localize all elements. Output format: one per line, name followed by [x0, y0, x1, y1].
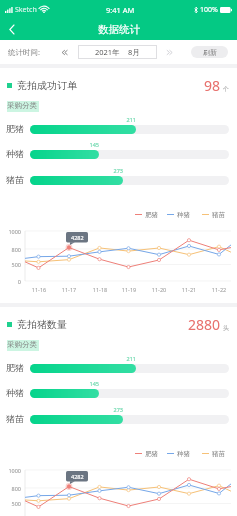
staticText: 数据统计	[98, 23, 140, 36]
staticText: 11-19	[118, 286, 140, 293]
staticText: 肥猪	[6, 362, 24, 373]
staticText: 11-18	[89, 286, 111, 293]
staticText: 肥猪	[145, 211, 158, 219]
staticText: 800	[0, 246, 21, 253]
button[interactable]: 种猪	[165, 209, 191, 220]
staticText: 头	[223, 324, 229, 332]
staticText: 猪苗	[212, 450, 225, 458]
staticText: 11-17	[58, 286, 80, 293]
button[interactable]: Previous month	[58, 45, 72, 59]
staticText: 猪苗	[6, 174, 24, 185]
staticText: 竞拍成功订单	[17, 79, 77, 92]
button[interactable]: 种猪	[165, 448, 191, 459]
button[interactable]: 2021年	[78, 45, 157, 59]
staticText: 4282	[71, 473, 84, 480]
button[interactable]: 刷新	[191, 46, 228, 58]
staticText: 种猪	[6, 387, 24, 398]
staticText: 种猪	[177, 211, 190, 219]
staticText: 11-22	[208, 286, 230, 293]
staticText: 98	[204, 76, 221, 95]
staticText: 2880	[188, 315, 221, 334]
staticText: 4282	[71, 234, 84, 241]
staticText: 种猪	[6, 148, 24, 159]
staticText: 11-20	[148, 286, 170, 293]
staticText: 100%	[200, 5, 218, 15]
staticText: 800	[0, 485, 21, 492]
staticText: 采购分类	[7, 340, 37, 349]
staticText: 1000	[0, 467, 21, 474]
button[interactable]: 猪苗	[200, 448, 226, 459]
staticText: 500	[0, 500, 21, 507]
staticText: 采购分类	[7, 101, 37, 110]
staticText: 肥猪	[145, 450, 158, 458]
staticText: 统计时间:	[8, 47, 41, 57]
button[interactable]: 肥猪	[133, 209, 159, 220]
staticText: 刷新	[203, 48, 217, 57]
button[interactable]: Back	[0, 19, 22, 40]
staticText: 0	[0, 278, 21, 285]
staticText: 9:41 AM	[106, 5, 135, 15]
staticText: 145	[85, 380, 99, 387]
staticText: 种猪	[177, 450, 190, 458]
staticText: Sketch	[15, 5, 37, 15]
staticText: 猪苗	[212, 211, 225, 219]
staticText: 273	[109, 406, 123, 413]
staticText: 个	[223, 85, 229, 93]
staticText: 11-16	[28, 286, 50, 293]
staticText: 211	[122, 355, 136, 362]
staticText: 211	[122, 116, 136, 123]
staticText: 11-21	[178, 286, 200, 293]
staticText: 2021年	[95, 47, 120, 57]
staticText: 竞拍猪数量	[17, 318, 67, 331]
staticText: 8月	[128, 47, 140, 57]
staticText: 273	[109, 167, 123, 174]
button[interactable]: 肥猪	[133, 448, 159, 459]
staticText: 猪苗	[6, 413, 24, 424]
staticText: 1000	[0, 228, 21, 235]
staticText: 500	[0, 261, 21, 268]
button[interactable]: 猪苗	[200, 209, 226, 220]
button[interactable]: Next month	[163, 45, 177, 59]
staticText: 145	[85, 141, 99, 148]
staticText: 肥猪	[6, 123, 24, 134]
